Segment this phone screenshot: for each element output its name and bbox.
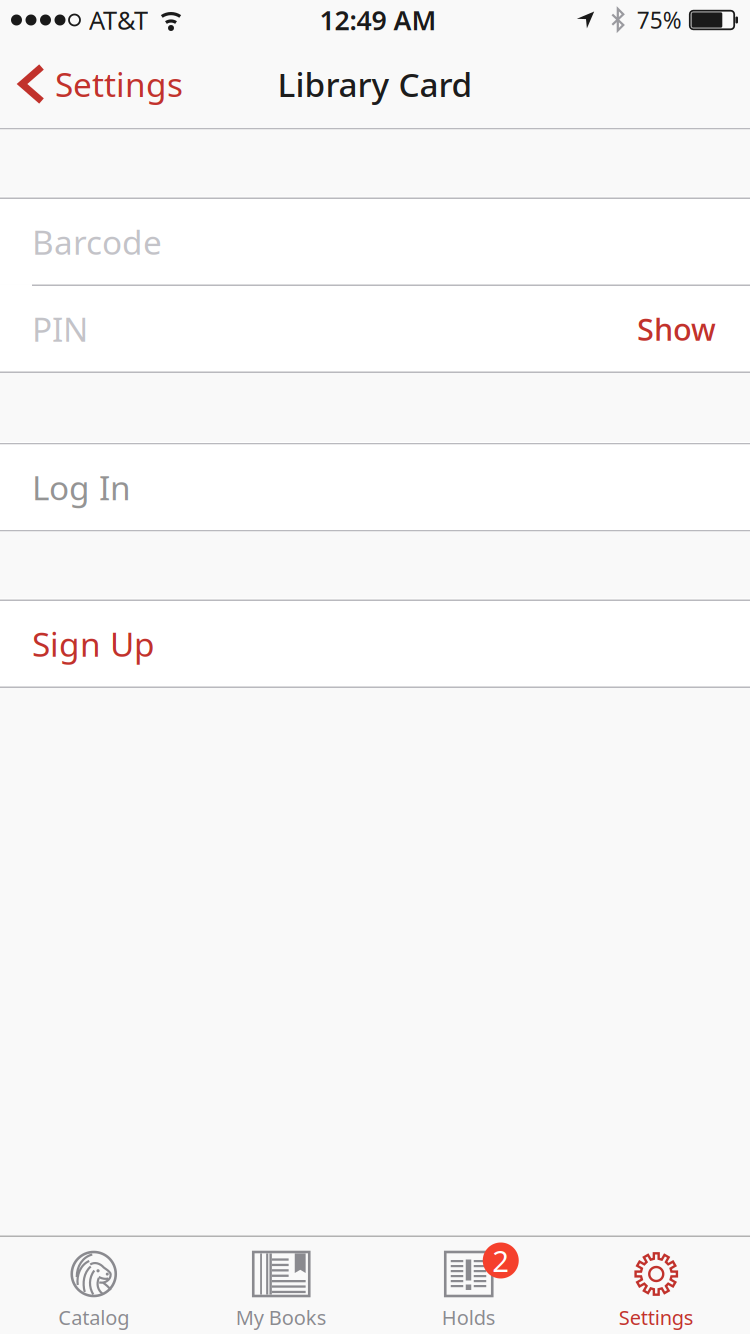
button[interactable]: My Books — [187, 1237, 375, 1334]
staticText: AT&T — [89, 3, 148, 37]
button[interactable]: Settings — [562, 1237, 750, 1334]
button[interactable]: Log In — [0, 444, 750, 530]
staticText: Show — [637, 308, 716, 349]
staticText: Log In — [32, 465, 131, 509]
staticText: Holds — [442, 1304, 496, 1331]
staticText: Settings — [55, 62, 183, 106]
button[interactable]: Sign Up — [0, 601, 750, 686]
staticText: 2 — [492, 1241, 509, 1280]
button[interactable]: Settings — [0, 40, 195, 128]
staticText: Catalog — [58, 1304, 129, 1331]
staticText: PIN — [32, 307, 88, 351]
staticText: Barcode — [32, 220, 162, 264]
button[interactable]: Catalog — [0, 1237, 187, 1334]
staticText: 75% — [637, 5, 682, 35]
staticText: Sign Up — [32, 622, 155, 666]
button[interactable]: Holds — [375, 1237, 562, 1334]
staticText: Library Card — [277, 62, 472, 106]
staticText: My Books — [236, 1304, 327, 1331]
button[interactable]: Show — [637, 308, 716, 349]
staticText: 12:49 AM — [319, 2, 436, 38]
staticText: Settings — [619, 1304, 694, 1331]
